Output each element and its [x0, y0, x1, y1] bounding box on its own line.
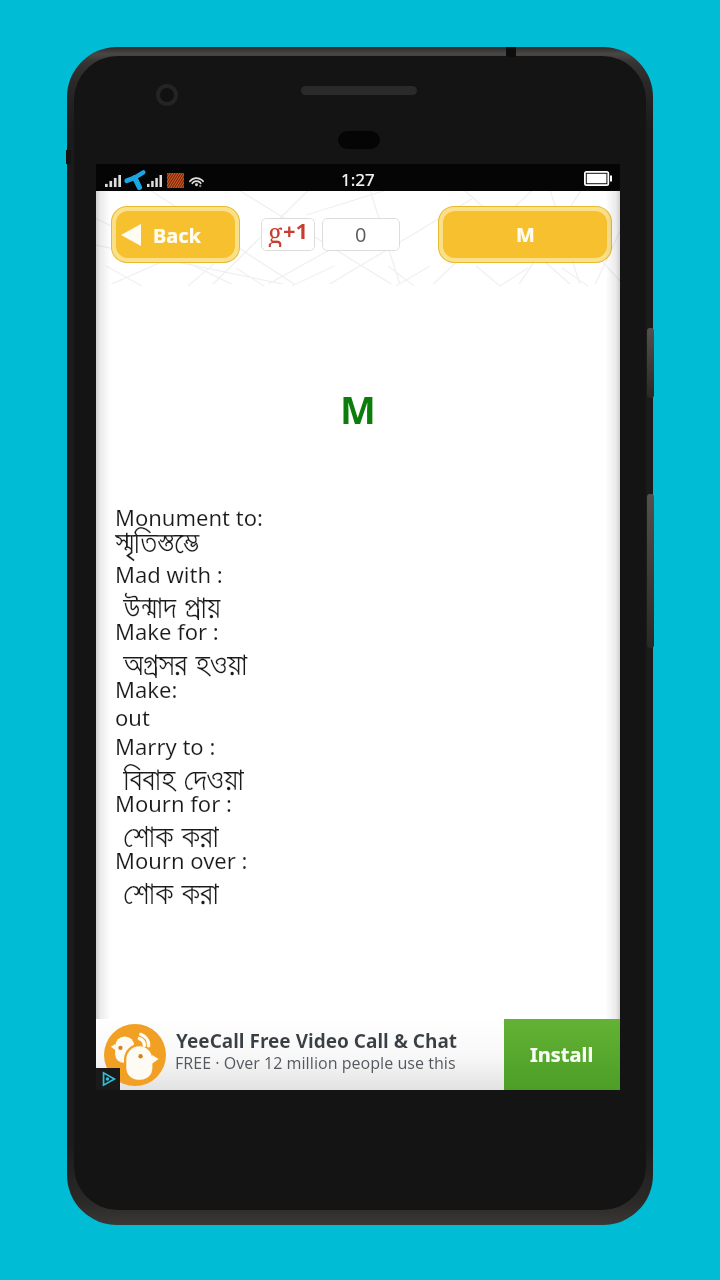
staticText: +1: [283, 218, 309, 245]
staticText: Marry to :: [115, 731, 216, 761]
staticText: FREE · Over 12 million people use this: [175, 1052, 456, 1074]
staticText: Mourn over :: [115, 845, 248, 875]
button[interactable]: Ad choices: [96, 1068, 120, 1090]
staticText: বিবাহ দেওয়া: [115, 756, 244, 800]
staticText: Mad with :: [115, 559, 223, 589]
staticText: উন্মাদ প্রায়: [115, 584, 221, 628]
staticText: M: [516, 221, 535, 248]
staticText: স্মৃতিস্তম্ভে: [115, 527, 200, 559]
staticText: Make:: [115, 674, 178, 704]
staticText: YeeCall Free Video Call & Chat: [176, 1028, 458, 1054]
staticText: 0: [355, 221, 367, 248]
staticText: শোক করা: [115, 870, 219, 914]
staticText: 1:27: [341, 168, 375, 191]
staticText: Make for :: [115, 616, 219, 646]
button[interactable]: g: [261, 218, 400, 251]
staticText: Install: [530, 1041, 594, 1068]
staticText: g: [268, 218, 283, 247]
staticText: Monument to:: [115, 502, 263, 532]
button[interactable]: Back: [116, 211, 235, 258]
staticText: Back: [153, 222, 201, 249]
button[interactable]: Install: [504, 1019, 620, 1090]
staticText: অগ্রসর হওয়া: [115, 641, 248, 685]
staticText: M: [340, 383, 376, 435]
staticText: Mourn for :: [115, 788, 232, 818]
staticText: শোক করা: [115, 813, 219, 857]
button[interactable]: M: [443, 211, 607, 258]
staticText: out: [115, 702, 150, 732]
